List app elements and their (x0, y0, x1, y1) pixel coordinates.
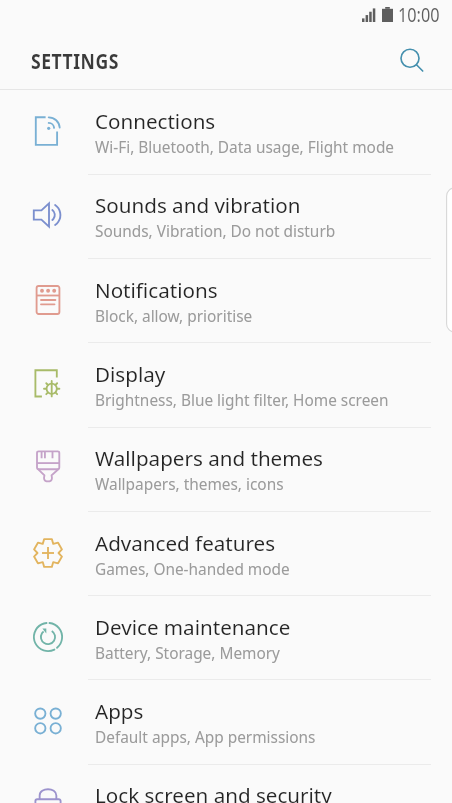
staticText: Wallpapers and themes (95, 444, 323, 472)
staticText: Default apps, App permissions (95, 727, 316, 748)
staticText: 10:00 (398, 2, 440, 28)
staticText: Sounds, Vibration, Do not disturb (95, 221, 336, 242)
button[interactable]: Search (391, 41, 435, 85)
staticText: Wi-Fi, Bluetooth, Data usage, Flight mod… (95, 137, 395, 158)
staticText: Connections (95, 107, 216, 135)
staticText: Battery, Storage, Memory (95, 643, 280, 664)
staticText: Device maintenance (95, 613, 291, 641)
staticText: Display (95, 360, 166, 388)
button[interactable]: Wallpapers and themes (0, 427, 452, 511)
staticText: Apps (95, 697, 144, 725)
button[interactable]: Notifications (0, 259, 452, 343)
staticText: Lock screen and security (95, 781, 332, 803)
button[interactable]: Advanced features (0, 512, 452, 596)
button[interactable]: Connections (0, 90, 452, 174)
staticText: Games, One-handed mode (95, 559, 290, 580)
staticText: Wallpapers, themes, icons (95, 474, 284, 495)
staticText: Notifications (95, 276, 218, 304)
button[interactable]: Display (0, 343, 452, 427)
button[interactable]: Device maintenance (0, 596, 452, 680)
button[interactable]: Sounds and vibration (0, 174, 452, 258)
staticText: Brightness, Blue light filter, Home scre… (95, 390, 389, 411)
staticText: Advanced features (95, 529, 276, 557)
button[interactable]: Apps (0, 680, 452, 764)
button[interactable]: Lock screen and security (0, 764, 452, 803)
staticText: Block, allow, prioritise (95, 306, 253, 327)
staticText: Sounds and vibration (95, 191, 301, 219)
staticText: SETTINGS (31, 46, 120, 75)
